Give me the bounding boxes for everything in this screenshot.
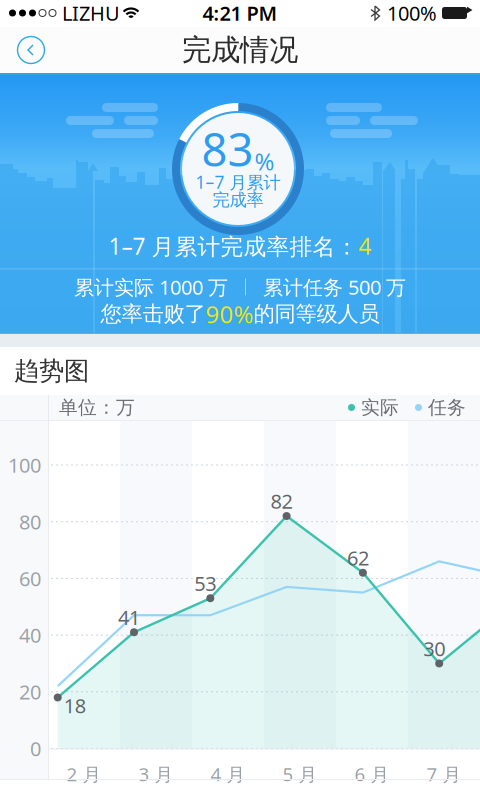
staticText: 趋势图 bbox=[14, 355, 89, 386]
staticText: 3 月 bbox=[138, 761, 173, 786]
staticText: 90% bbox=[205, 298, 253, 330]
staticText: 0 bbox=[30, 735, 41, 762]
staticText: 完成情况 bbox=[182, 32, 298, 68]
staticText: 80 bbox=[19, 508, 41, 535]
staticText: LIZHU bbox=[62, 0, 120, 26]
staticText: 1–7 月累计 bbox=[195, 170, 280, 193]
staticText: 完成率 bbox=[212, 189, 263, 211]
staticText: 82 bbox=[271, 488, 293, 514]
button[interactable]: Back bbox=[6, 27, 56, 73]
staticText: 4:21 PM bbox=[202, 0, 277, 26]
staticText: 62 bbox=[347, 544, 369, 571]
staticText: 实际 bbox=[361, 396, 399, 419]
staticText: 4 月 bbox=[210, 761, 245, 786]
staticText: 累计任务 500 万 bbox=[263, 274, 406, 300]
staticText: 累计实际 1000 万 bbox=[74, 274, 228, 300]
staticText: 40 bbox=[19, 622, 41, 648]
staticText: 18 bbox=[64, 692, 86, 719]
staticText: % bbox=[254, 145, 274, 177]
staticText: 7 月 bbox=[426, 761, 461, 786]
staticText: 60 bbox=[19, 565, 41, 592]
staticText: 5 月 bbox=[282, 761, 317, 786]
staticText: 30 bbox=[423, 635, 445, 662]
staticText: 4 bbox=[358, 231, 371, 261]
staticText: 83 bbox=[201, 119, 253, 179]
staticText: 6 月 bbox=[354, 761, 389, 786]
staticText: 53 bbox=[194, 570, 216, 597]
staticText: 的同等级人员 bbox=[253, 301, 379, 327]
staticText: 1–7 月累计完成率排名： bbox=[108, 231, 358, 261]
staticText: 您率击败了 bbox=[100, 301, 205, 327]
staticText: 20 bbox=[19, 678, 41, 705]
staticText: 2 月 bbox=[66, 761, 101, 786]
staticText: 41 bbox=[118, 604, 140, 631]
staticText: 任务 bbox=[428, 396, 466, 419]
staticText: 100% bbox=[387, 0, 437, 26]
staticText: 100 bbox=[8, 452, 41, 478]
staticText: 单位：万 bbox=[59, 396, 135, 419]
